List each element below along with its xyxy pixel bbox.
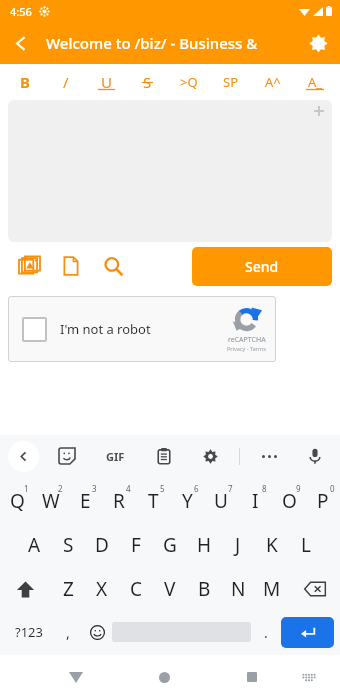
button[interactable]: B — [187, 569, 221, 609]
button[interactable]: M — [255, 569, 289, 609]
staticText: T — [148, 488, 159, 514]
button[interactable]: Search — [92, 245, 134, 287]
button[interactable]: . — [251, 615, 281, 649]
staticText: W — [42, 488, 60, 514]
button[interactable]: Back — [56, 657, 96, 697]
staticText: F — [131, 532, 141, 558]
button[interactable]: C — [119, 569, 153, 609]
button[interactable]: F — [119, 525, 153, 565]
staticText: reCAPTCHA — [228, 335, 266, 345]
button[interactable]: Collapse toolbar — [8, 441, 39, 472]
button[interactable]: S — [127, 64, 168, 100]
button[interactable]: ?123 — [4, 615, 53, 649]
staticText: G — [163, 532, 177, 558]
staticText: , — [66, 623, 70, 642]
button[interactable]: Attach file — [50, 245, 92, 287]
staticText: 4 — [126, 483, 131, 494]
button[interactable]: L — [289, 525, 323, 565]
button[interactable]: N — [221, 569, 255, 609]
button[interactable]: D — [85, 525, 119, 565]
button[interactable]: J — [221, 525, 255, 565]
button[interactable]: Recent apps — [232, 657, 272, 697]
button[interactable]: G — [153, 525, 187, 565]
button[interactable]: Switch keyboard — [292, 660, 326, 694]
staticText: GIF — [106, 449, 125, 464]
button[interactable]: Emoji — [82, 615, 112, 649]
staticText: B — [20, 72, 30, 92]
button[interactable]: GIF — [95, 436, 135, 476]
staticText: U — [101, 72, 112, 92]
staticText: A^ — [265, 73, 281, 91]
button[interactable]: O — [272, 481, 306, 521]
button[interactable]: T — [136, 481, 170, 521]
button[interactable]: K — [255, 525, 289, 565]
button[interactable]: P — [306, 481, 340, 521]
button[interactable]: X — [85, 569, 119, 609]
staticText: N — [231, 576, 246, 602]
staticText: O — [282, 488, 297, 514]
other: Expand — [314, 106, 324, 116]
staticText: A — [28, 532, 41, 558]
button[interactable]: U — [204, 481, 238, 521]
button[interactable]: Clipboard — [147, 439, 181, 473]
staticText: . — [264, 623, 268, 642]
staticText: 5 — [160, 483, 165, 494]
button[interactable]: SP — [210, 64, 252, 100]
button[interactable]: Shift — [0, 569, 51, 609]
staticText: Welcome to /biz/ - Business & Finance — [46, 33, 292, 53]
button[interactable]: Keyboard settings — [193, 439, 227, 473]
button[interactable]: Back — [0, 22, 42, 64]
staticText: Y — [182, 488, 193, 514]
button[interactable]: S — [51, 525, 85, 565]
staticText: Z — [63, 576, 74, 602]
button[interactable]: R — [102, 481, 136, 521]
staticText: 9 — [296, 483, 301, 494]
staticText: D — [95, 532, 109, 558]
button[interactable]: Settings — [296, 22, 340, 64]
button[interactable]: Stickers — [50, 439, 84, 473]
button[interactable]: , — [53, 615, 82, 649]
staticText: Q — [10, 488, 25, 514]
staticText: M — [263, 576, 281, 602]
staticText: L — [301, 532, 311, 558]
staticText: 7 — [228, 483, 233, 494]
button[interactable]: Voice input — [298, 439, 332, 473]
staticText: K — [266, 532, 278, 558]
staticText: U — [214, 488, 228, 514]
button[interactable]: Home — [144, 657, 184, 697]
button[interactable]: More options — [252, 439, 286, 473]
button[interactable]: Q — [0, 481, 34, 521]
staticText: S — [143, 72, 152, 92]
button[interactable]: E — [68, 481, 102, 521]
staticText: I — [252, 488, 259, 514]
staticText: S — [63, 532, 74, 558]
button[interactable]: Enter — [281, 617, 334, 648]
staticText: 4:56 — [10, 4, 32, 19]
button[interactable]: A — [17, 525, 51, 565]
staticText: ?123 — [15, 623, 43, 641]
button[interactable]: V — [153, 569, 187, 609]
button[interactable]: Z — [51, 569, 85, 609]
button[interactable]: Y — [170, 481, 204, 521]
button[interactable]: U — [86, 64, 127, 100]
button[interactable]: A^ — [252, 64, 294, 100]
staticText: R — [113, 488, 125, 514]
staticText: I'm not a robot — [60, 320, 151, 338]
button[interactable]: Backspace — [289, 569, 340, 609]
staticText: 1 — [24, 483, 29, 494]
staticText: V — [164, 576, 176, 602]
button[interactable]: / — [45, 64, 86, 100]
button[interactable]: B — [4, 64, 45, 100]
button[interactable]: Send — [192, 247, 332, 286]
button[interactable]: W — [34, 481, 68, 521]
staticText: 6 — [194, 483, 199, 494]
button[interactable]: Attach image — [8, 245, 50, 287]
button[interactable]: H — [187, 525, 221, 565]
button[interactable]: A_ — [294, 64, 336, 100]
staticText: >Q — [180, 73, 198, 91]
button[interactable]: I'm not a robot — [8, 296, 276, 362]
button[interactable]: I — [238, 481, 272, 521]
button[interactable]: >Q — [168, 64, 210, 100]
